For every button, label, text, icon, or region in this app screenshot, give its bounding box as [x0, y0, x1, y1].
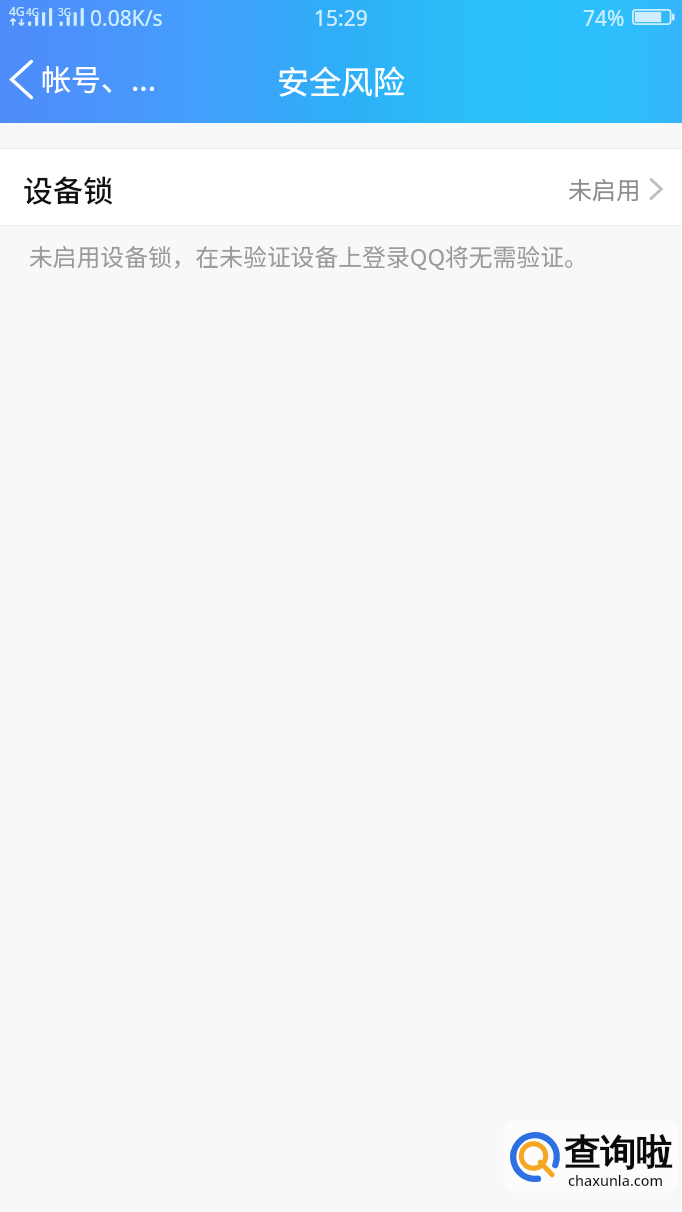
- button[interactable]: Back: [0, 52, 171, 107]
- staticText: 设备锁: [23, 167, 113, 210]
- staticText: 15:29: [314, 4, 368, 33]
- staticText: 74%: [583, 4, 625, 33]
- staticText: chaxunla.com: [568, 1171, 664, 1190]
- staticText: 帐号、...: [41, 56, 157, 99]
- button[interactable]: 设备锁: [0, 149, 682, 225]
- staticText: 3G: [58, 5, 71, 19]
- staticText: 未启用设备锁，在未验证设备上登录QQ将无需验证。: [29, 238, 588, 272]
- staticText: 4G: [9, 3, 25, 19]
- staticText: 安全风险: [277, 57, 406, 103]
- staticText: 查询啦: [564, 1130, 672, 1175]
- staticText: 未启用: [568, 171, 640, 206]
- staticText: 0.08K/s: [90, 4, 163, 33]
- staticText: 4G: [26, 5, 39, 19]
